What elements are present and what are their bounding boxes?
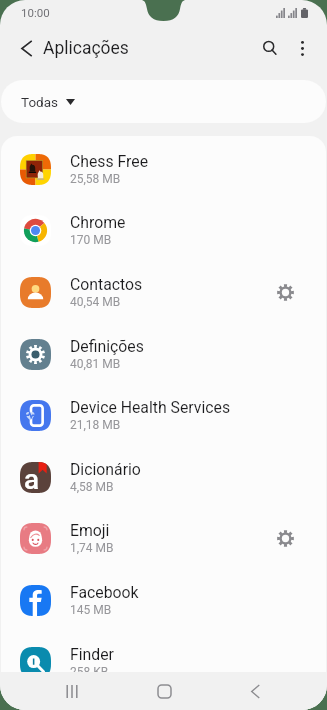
button[interactable]: Back	[8, 30, 44, 66]
staticText: Aplicações	[43, 38, 129, 59]
button[interactable]: a	[1, 446, 326, 508]
staticText: 4,58 MB	[70, 480, 114, 494]
staticText: 40,81 MB	[70, 357, 121, 371]
staticText: Contactos	[70, 275, 143, 294]
staticText: 170 MB	[70, 233, 112, 247]
button[interactable]: Todas	[1, 80, 326, 123]
staticText: 145 MB	[70, 603, 112, 617]
button[interactable]: Home	[137, 672, 191, 710]
staticText: Finder	[70, 645, 114, 664]
staticText: 21,18 MB	[70, 418, 121, 432]
button[interactable]: App settings	[270, 523, 300, 553]
button[interactable]: Device Health Services	[1, 384, 326, 446]
staticText: 258 KB	[70, 665, 109, 679]
button[interactable]: Search	[253, 29, 287, 67]
button[interactable]: Chrome	[1, 199, 326, 261]
staticText: Dicionário	[70, 460, 141, 479]
staticText: 10:00	[21, 6, 50, 19]
staticText: Chrome	[70, 213, 126, 232]
button[interactable]: More options	[287, 29, 318, 67]
staticText: 1,74 MB	[70, 541, 114, 555]
button[interactable]: Emoji	[1, 507, 326, 569]
staticText: Device Health Services	[70, 398, 231, 417]
staticText: 40,54 MB	[70, 295, 121, 309]
button[interactable]: Finder	[1, 631, 326, 693]
button[interactable]: App settings	[270, 277, 300, 307]
staticText: Definições	[70, 337, 144, 356]
staticText: a	[24, 463, 40, 494]
button[interactable]: Contactos	[1, 261, 326, 323]
button[interactable]: Facebook	[1, 569, 326, 631]
button[interactable]: Recents	[45, 672, 99, 710]
staticText: 25,58 MB	[70, 172, 121, 186]
button[interactable]: Chess Free	[1, 138, 326, 200]
staticText: Chess Free	[70, 152, 149, 171]
staticText: Emoji	[70, 521, 110, 540]
button[interactable]: Definições	[1, 323, 326, 385]
button[interactable]: Back	[228, 672, 282, 710]
staticText: Facebook	[70, 583, 139, 602]
staticText: Todas	[21, 94, 59, 110]
